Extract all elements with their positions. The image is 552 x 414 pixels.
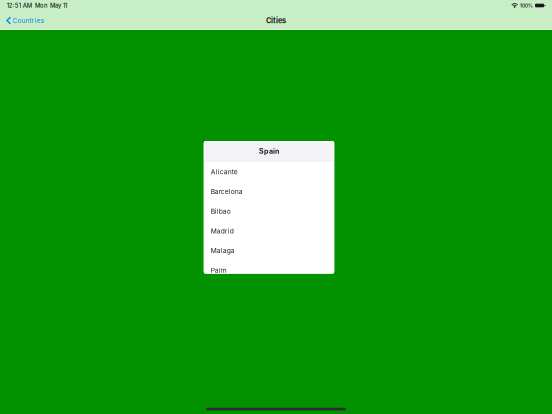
staticText: 12:51 AM xyxy=(7,2,32,9)
button[interactable]: Countries xyxy=(0,11,50,30)
staticText: 100% xyxy=(520,2,533,9)
staticText: Alicante xyxy=(211,168,238,176)
button[interactable]: Bilbao xyxy=(204,201,334,221)
staticText: Countries xyxy=(13,16,45,25)
button[interactable]: Madrid xyxy=(204,221,334,241)
staticText: Madrid xyxy=(211,227,234,235)
staticText: Bilbao xyxy=(211,207,231,215)
staticText: Barcelona xyxy=(211,187,243,196)
staticText: Cities xyxy=(266,16,286,25)
staticText: Mon May 11 xyxy=(35,2,67,9)
button[interactable]: Malaga xyxy=(204,241,334,260)
staticText: Spain xyxy=(259,147,279,155)
staticText: Palm xyxy=(211,266,227,274)
button[interactable]: Alicante xyxy=(204,162,334,182)
button[interactable]: Barcelona xyxy=(204,182,334,201)
staticText: Malaga xyxy=(211,247,235,255)
button[interactable]: Palm xyxy=(204,260,334,280)
